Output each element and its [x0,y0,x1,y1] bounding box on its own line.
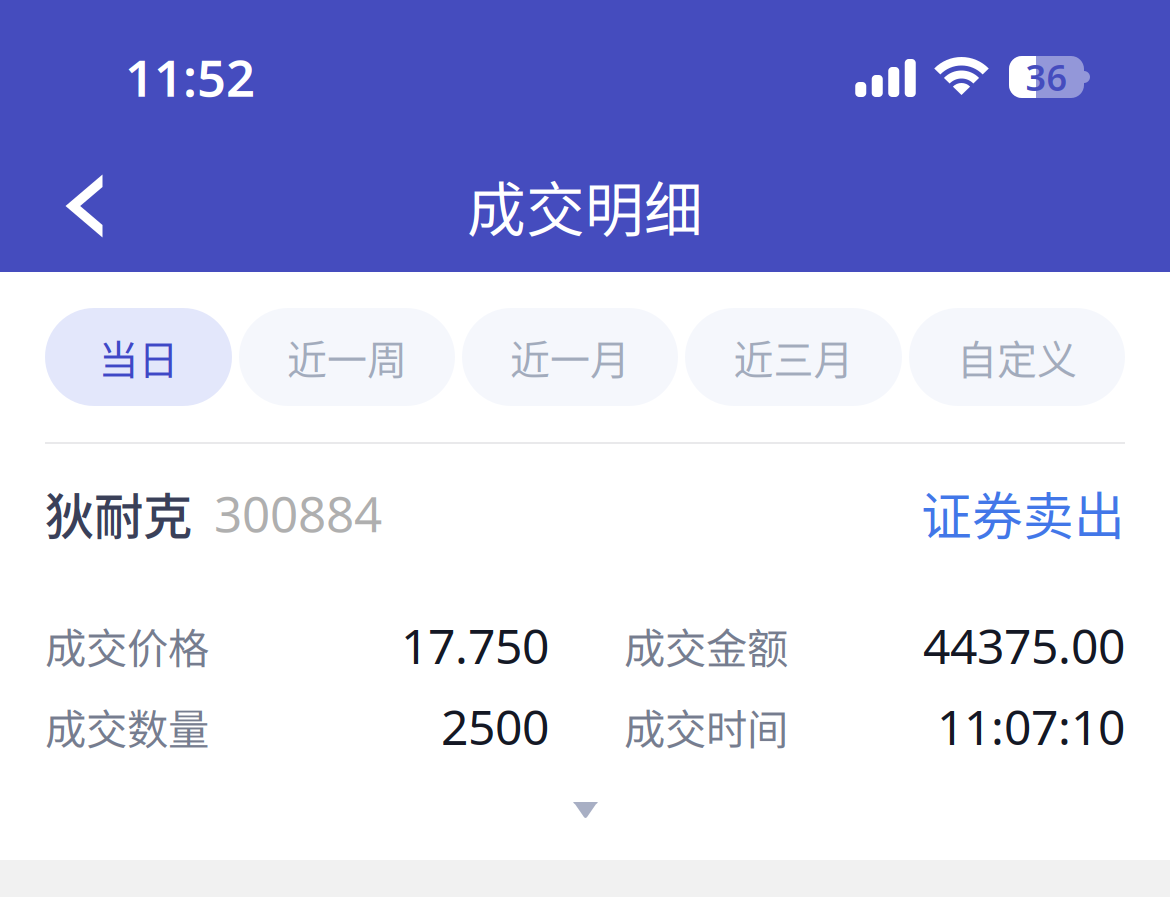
staticText: 36 [1025,53,1067,101]
button[interactable]: Show more [550,780,621,841]
button[interactable]: 自定义 [909,308,1125,406]
staticText: 自定义 [957,328,1077,386]
staticText: 成交数量 [45,697,209,756]
button[interactable]: 近三月 [685,308,902,406]
button[interactable]: 当日 [45,308,232,406]
staticText: 成交金额 [624,616,788,675]
staticText: 2500 [441,695,549,758]
staticText: 成交价格 [45,616,209,675]
button[interactable]: 近一周 [239,308,455,406]
staticText: 成交时间 [624,697,788,756]
staticText: 17.750 [401,614,549,677]
staticText: 近一月 [510,328,630,386]
staticText: 近三月 [733,328,853,386]
staticText: 11:52 [125,43,255,111]
staticText: 狄耐克 [45,477,192,549]
button[interactable]: 近一月 [462,308,678,406]
button[interactable]: Back [29,151,139,261]
staticText: 近一周 [287,328,407,386]
staticText: 成交明细 [467,163,703,248]
staticText: 300884 [214,480,382,546]
staticText: 11:07:10 [937,695,1125,758]
staticText: 44375.00 [923,614,1125,677]
staticText: 当日 [98,328,178,386]
staticText: 证券卖出 [921,476,1125,550]
